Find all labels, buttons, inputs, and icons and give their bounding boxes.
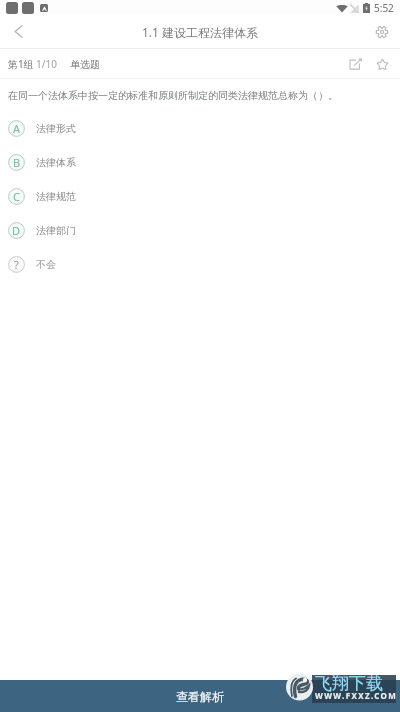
staticText: 飞翔下载	[315, 673, 383, 694]
button[interactable]: 查看解析	[0, 680, 400, 712]
staticText: 查看解析	[176, 689, 224, 704]
button[interactable]: C	[0, 179, 400, 213]
button[interactable]: Settings	[363, 15, 400, 48]
button[interactable]: A	[0, 111, 400, 145]
staticText: 第1组	[8, 57, 34, 71]
staticText: ?	[14, 257, 19, 272]
staticText: 法律部门	[36, 224, 76, 237]
button[interactable]: Favourite	[369, 51, 395, 77]
staticText: 5:52	[374, 1, 394, 15]
staticText: 不会	[36, 258, 56, 271]
staticText: 单选题	[70, 58, 100, 71]
staticText: 法律规范	[36, 190, 76, 203]
staticText: A	[13, 121, 21, 136]
staticText: 1/10	[36, 57, 57, 71]
button[interactable]: ?	[0, 247, 400, 281]
staticText: 在同一个法体系中按一定的标准和原则所制定的同类法律规范总称为（）。	[8, 89, 338, 102]
staticText: C	[13, 189, 20, 204]
staticText: 1.1 建设工程法律体系	[142, 24, 259, 40]
staticText: 法律体系	[36, 156, 76, 169]
button[interactable]: B	[0, 145, 400, 179]
staticText: D	[12, 223, 21, 238]
staticText: B	[13, 155, 21, 170]
button[interactable]: D	[0, 213, 400, 247]
staticText: 法律形式	[36, 122, 76, 135]
button[interactable]: Back	[0, 15, 37, 48]
button[interactable]: Share	[342, 51, 368, 77]
staticText: WWW.FXXZ.COM	[315, 690, 398, 701]
